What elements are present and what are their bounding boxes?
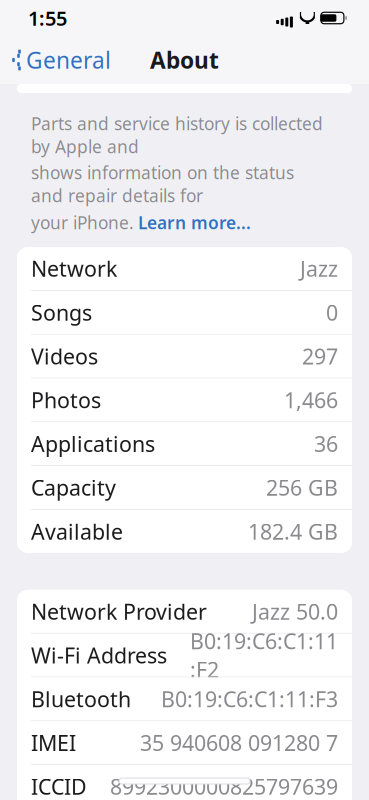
staticText: 0 — [326, 298, 338, 326]
staticText: Learn more... — [138, 211, 251, 234]
staticText: 182.4 GB — [248, 517, 338, 545]
button[interactable]: Applications — [17, 422, 352, 465]
staticText: B0:19:C6:C1:11:F2 — [190, 627, 338, 684]
staticText: your iPhone. — [31, 211, 134, 234]
staticText: Applications — [31, 430, 155, 458]
button[interactable]: Learn more... — [134, 210, 251, 235]
button[interactable]: Bluetooth — [17, 677, 352, 720]
staticText: B0:19:C6:C1:11:F3 — [161, 685, 338, 713]
staticText: General — [26, 45, 111, 75]
staticText: Wi-Fi Address — [31, 641, 167, 669]
staticText: 297 — [302, 342, 338, 370]
button[interactable]: Capacity — [17, 466, 352, 509]
staticText: Photos — [31, 386, 101, 414]
staticText: Jazz 50.0 — [252, 597, 338, 625]
staticText: 1:55 — [28, 5, 67, 31]
staticText: Network — [31, 254, 117, 283]
staticText: Capacity — [31, 473, 116, 502]
button[interactable]: Songs — [17, 291, 352, 334]
staticText: About — [150, 45, 219, 75]
staticText: 1,466 — [284, 386, 338, 414]
button[interactable]: Network Provider — [17, 590, 352, 633]
staticText: Parts and service history is collected b… — [31, 112, 323, 158]
button[interactable]: Photos — [17, 378, 352, 421]
staticText: 256 GB — [266, 473, 338, 502]
staticText: Network Provider — [31, 597, 207, 625]
button[interactable]: Network — [17, 247, 352, 290]
staticText: ICCID — [31, 772, 87, 800]
staticText: Videos — [31, 342, 98, 370]
button[interactable]: Available — [17, 510, 352, 553]
button[interactable]: Videos — [17, 335, 352, 378]
staticText: Available — [31, 517, 123, 545]
staticText: 8992300000825797639 — [110, 772, 338, 800]
staticText: shows information on the status and repa… — [31, 161, 294, 207]
staticText: Songs — [31, 298, 92, 326]
staticText: Bluetooth — [31, 685, 131, 713]
button[interactable]: General — [0, 36, 121, 84]
staticText: 36 — [314, 430, 338, 458]
button[interactable]: IMEI — [17, 721, 352, 764]
staticText: 35 940608 091280 7 — [140, 729, 338, 757]
staticText: Jazz — [300, 254, 338, 283]
staticText: IMEI — [31, 729, 76, 757]
button[interactable]: ICCID — [17, 765, 352, 800]
button[interactable]: Wi-Fi Address — [17, 634, 352, 677]
